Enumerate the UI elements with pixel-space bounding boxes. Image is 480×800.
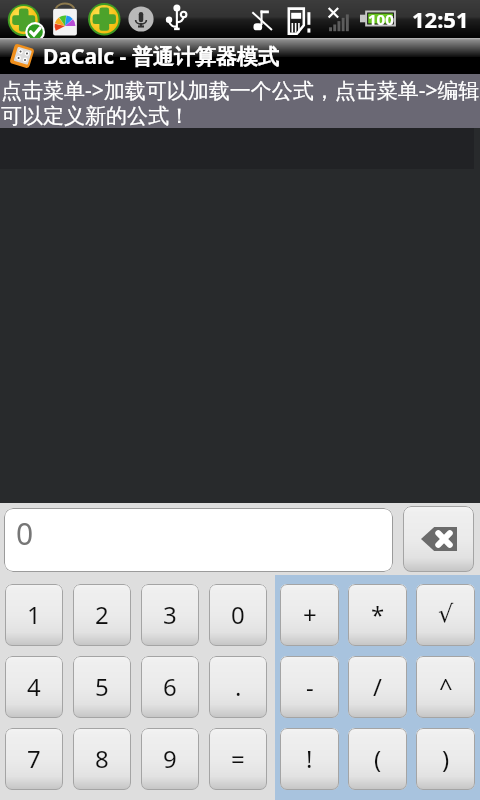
button[interactable]: 3 xyxy=(141,584,199,646)
button[interactable]: 7 xyxy=(5,728,63,790)
staticText: - xyxy=(306,670,314,703)
staticText: √ xyxy=(438,600,454,628)
staticText: 点击菜单->加载可以加载一个公式，点击菜单->编辑 可以定义新的公式！ xyxy=(1,76,480,128)
staticText: 9 xyxy=(163,742,177,775)
staticText: ( xyxy=(374,742,382,775)
staticText: 0 xyxy=(16,513,34,554)
staticText: 3 xyxy=(163,598,177,631)
button[interactable]: ) xyxy=(416,728,475,790)
staticText: * xyxy=(371,598,385,631)
button[interactable]: - xyxy=(280,656,339,718)
staticText: DaCalc - 普通计算器模式 xyxy=(43,42,279,71)
staticText: 1 xyxy=(27,598,41,631)
button[interactable]: * xyxy=(348,584,407,646)
button[interactable]: √ xyxy=(416,584,475,646)
button[interactable]: ! xyxy=(280,728,339,790)
staticText: 100 xyxy=(368,9,394,28)
button[interactable]: 4 xyxy=(5,656,63,718)
button[interactable]: ( xyxy=(348,728,407,790)
button[interactable]: + xyxy=(280,584,339,646)
staticText: 4 xyxy=(27,670,41,703)
button[interactable]: 2 xyxy=(73,584,131,646)
button[interactable]: Backspace xyxy=(403,506,474,572)
staticText: ) xyxy=(442,742,450,775)
button[interactable]: 0 xyxy=(4,508,393,572)
button[interactable]: 5 xyxy=(73,656,131,718)
staticText: . xyxy=(235,670,242,703)
button[interactable]: = xyxy=(209,728,267,790)
staticText: / xyxy=(373,670,382,703)
staticText: 2 xyxy=(95,598,109,631)
staticText: 8 xyxy=(95,742,109,775)
button[interactable]: ^ xyxy=(416,656,475,718)
staticText: 12:51 xyxy=(412,4,469,34)
staticText: 5 xyxy=(95,670,109,703)
button[interactable]: / xyxy=(348,656,407,718)
button[interactable]: . xyxy=(209,656,267,718)
staticText: + xyxy=(303,598,317,631)
staticText: 0 xyxy=(231,598,245,631)
button[interactable]: 6 xyxy=(141,656,199,718)
button[interactable]: 9 xyxy=(141,728,199,790)
staticText: = xyxy=(231,742,245,775)
staticText: 6 xyxy=(163,670,177,703)
button[interactable]: 1 xyxy=(5,584,63,646)
staticText: 7 xyxy=(27,742,41,775)
button[interactable]: 8 xyxy=(73,728,131,790)
staticText: ^ xyxy=(439,670,453,703)
staticText: ! xyxy=(306,742,313,775)
button[interactable]: 0 xyxy=(209,584,267,646)
